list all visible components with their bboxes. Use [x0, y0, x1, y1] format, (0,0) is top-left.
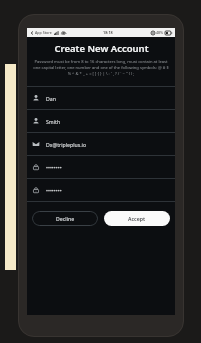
button[interactable]: Email [27, 133, 175, 155]
button[interactable]: Accept [104, 211, 170, 226]
other: Password [32, 163, 40, 171]
other: Confirm password [32, 186, 40, 194]
staticText: Accept [128, 215, 146, 222]
staticText: 48% [156, 30, 164, 35]
button[interactable]: Confirm password [27, 179, 175, 201]
staticText: •••••••• [46, 164, 62, 171]
button[interactable]: Last name [27, 110, 175, 132]
other: Email [32, 140, 40, 148]
other: First name [32, 94, 40, 102]
button[interactable]: Password [27, 156, 175, 178]
staticText: 18:18 [103, 30, 113, 35]
button[interactable]: Decline [32, 211, 98, 226]
other: Last name [32, 117, 40, 125]
button[interactable]: First name [27, 87, 175, 109]
staticText: •••••••• [46, 187, 62, 194]
staticText: Dan [46, 95, 56, 102]
staticText: App Store [35, 30, 52, 35]
staticText: Create New Account [54, 42, 149, 55]
staticText: Password must be from 8 to 16 characters… [33, 59, 169, 77]
staticText: Smith [46, 118, 61, 125]
staticText: Dx@tripleplus.io [46, 141, 87, 148]
staticText: Decline [56, 215, 75, 222]
